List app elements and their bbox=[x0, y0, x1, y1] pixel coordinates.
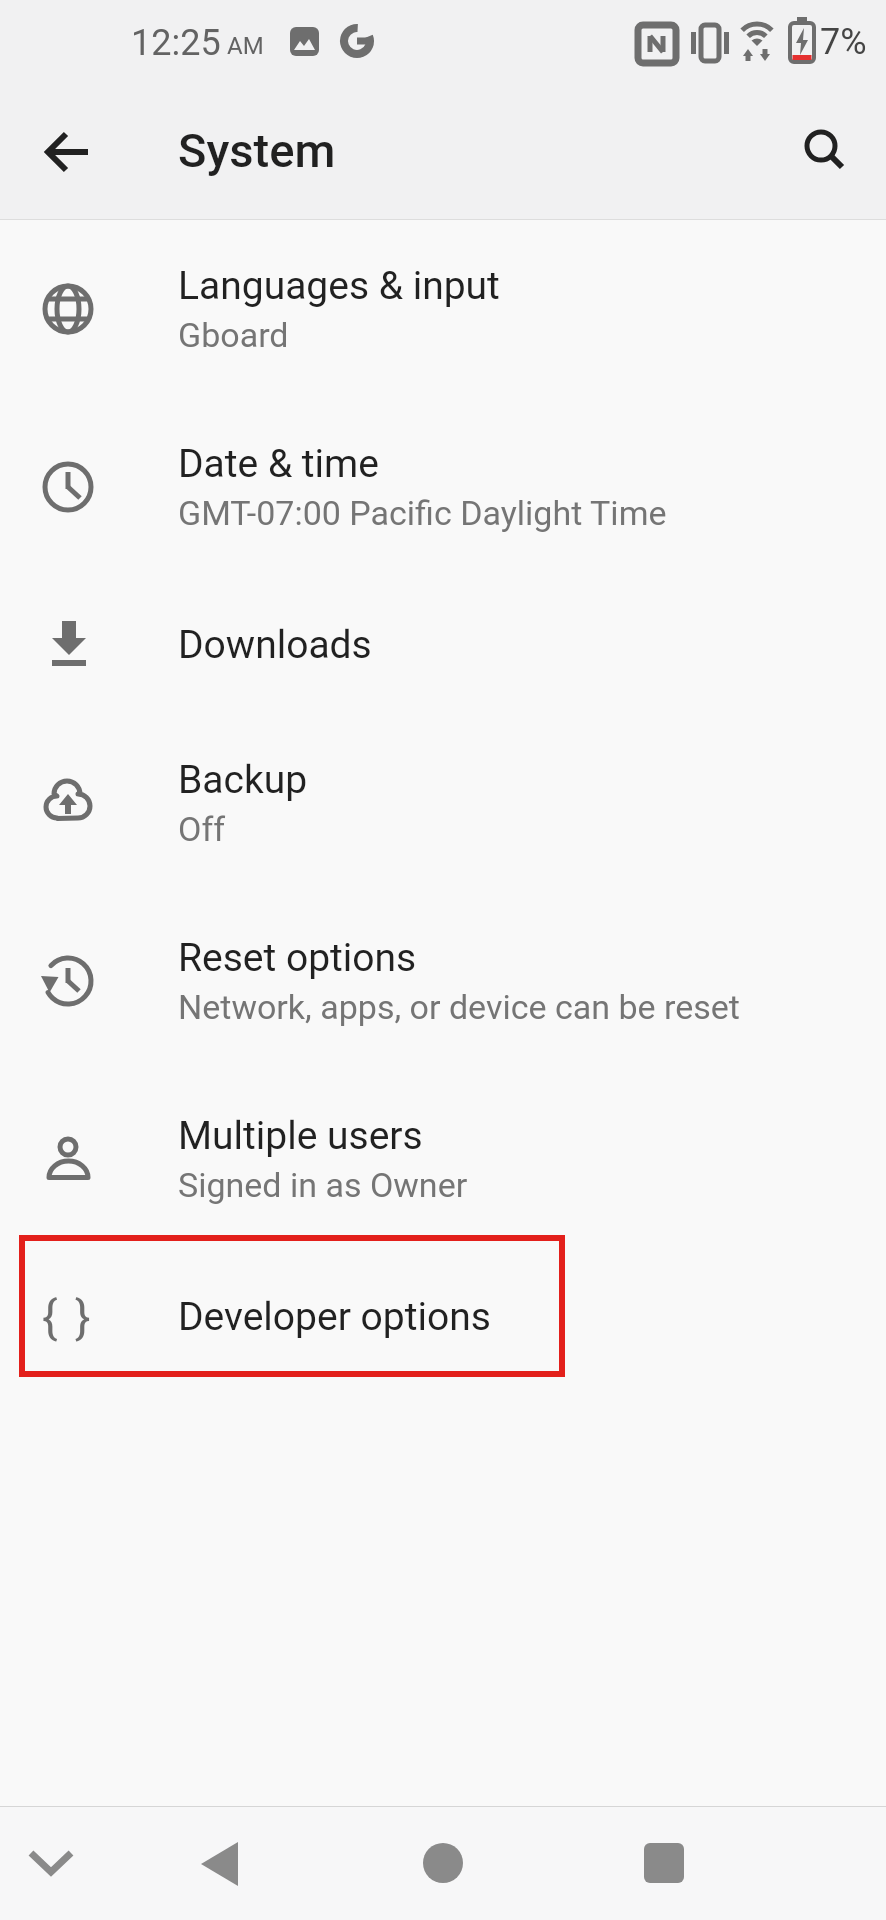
button[interactable]: Date & time bbox=[0, 398, 886, 576]
staticText: Multiple users bbox=[178, 1113, 423, 1159]
button[interactable] bbox=[631, 1830, 697, 1896]
button[interactable]: Multiple users bbox=[0, 1070, 886, 1248]
staticText: Languages & input bbox=[178, 263, 500, 309]
button[interactable] bbox=[410, 1830, 476, 1896]
staticText: Date & time bbox=[178, 441, 379, 487]
staticText: System bbox=[178, 123, 336, 178]
staticText: Downloads bbox=[178, 622, 372, 668]
staticText: 12:25 bbox=[131, 22, 221, 64]
staticText: Backup bbox=[178, 757, 308, 803]
button[interactable]: Backup bbox=[0, 714, 886, 892]
staticText: Network, apps, or device can be reset bbox=[178, 987, 740, 1027]
staticText: Signed in as Owner bbox=[178, 1165, 468, 1205]
button[interactable] bbox=[24, 108, 112, 196]
staticText: Reset options bbox=[178, 935, 417, 981]
staticText: GMT-07:00 Pacific Daylight Time bbox=[178, 493, 667, 533]
button[interactable]: { } bbox=[0, 1248, 886, 1386]
staticText: Developer options bbox=[178, 1294, 491, 1340]
button[interactable] bbox=[781, 106, 869, 194]
staticText: AM bbox=[227, 32, 264, 60]
button[interactable]: Downloads bbox=[0, 576, 886, 714]
button[interactable]: Languages & input bbox=[0, 220, 886, 398]
button[interactable] bbox=[18, 1830, 84, 1896]
staticText: 7% bbox=[820, 21, 867, 63]
button[interactable] bbox=[188, 1831, 254, 1897]
button[interactable]: Reset options bbox=[0, 892, 886, 1070]
staticText: Gboard bbox=[178, 315, 289, 355]
staticText: Off bbox=[178, 809, 226, 849]
staticText: { } bbox=[42, 1290, 94, 1344]
